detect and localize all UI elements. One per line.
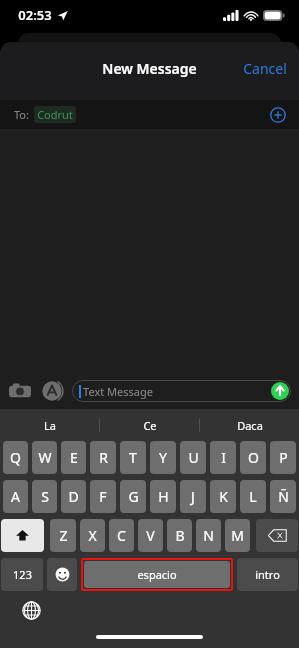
button[interactable]: Ce (100, 409, 199, 441)
button[interactable]: J (180, 480, 206, 513)
button[interactable]: F (90, 480, 116, 513)
button[interactable]: D (61, 480, 86, 513)
button[interactable]: N (196, 519, 221, 552)
staticText: C (117, 526, 126, 545)
button[interactable]: Ñ (270, 480, 296, 513)
staticText: N (203, 526, 214, 545)
staticText: U (188, 448, 199, 467)
staticText: Cancel (243, 59, 287, 78)
button[interactable]: L (240, 480, 266, 513)
button[interactable]: U (180, 441, 206, 474)
button[interactable]: A (3, 480, 28, 513)
staticText: Ce (143, 418, 157, 433)
staticText: S (41, 487, 49, 506)
button[interactable]: 123 (1, 558, 43, 591)
staticText: B (175, 526, 185, 545)
staticText: I (221, 448, 226, 467)
button[interactable]: G (120, 480, 146, 513)
staticText: K (219, 487, 228, 506)
button[interactable]: H (150, 480, 176, 513)
button[interactable]: I (210, 441, 236, 474)
button[interactable]: To: (0, 100, 299, 129)
button[interactable]: W (32, 441, 57, 474)
button[interactable]: Q (3, 441, 28, 474)
staticText: 02:53 (18, 6, 52, 24)
staticText: Ñ (278, 487, 289, 506)
staticText: Z (59, 526, 68, 545)
staticText: T (129, 448, 137, 467)
staticText: H (158, 487, 169, 506)
button[interactable]: Add contact (265, 102, 291, 128)
staticText: Y (159, 448, 167, 467)
button[interactable]: Send (271, 382, 289, 400)
button[interactable]: intro (237, 558, 298, 591)
button[interactable]: La (0, 409, 99, 441)
staticText: J (191, 487, 195, 506)
button[interactable]: Daca (200, 409, 299, 441)
staticText: P (279, 448, 288, 467)
staticText: D (68, 487, 79, 506)
button[interactable]: P (270, 441, 296, 474)
button[interactable]: Text Message (72, 380, 291, 402)
staticText: Codrut (37, 107, 73, 122)
staticText: G (128, 487, 139, 506)
button[interactable]: Z (50, 519, 76, 552)
staticText: M (231, 526, 244, 545)
staticText: 123 (13, 567, 32, 582)
button[interactable]: Change keyboard language (20, 599, 42, 621)
button[interactable]: Camera (8, 379, 32, 403)
button[interactable]: Backspace (256, 519, 298, 552)
button[interactable]: Shift (1, 519, 44, 552)
button[interactable]: S (32, 480, 57, 513)
staticText: intro (255, 567, 280, 582)
staticText: E (70, 448, 78, 467)
staticText: Daca (237, 418, 263, 433)
button[interactable]: K (210, 480, 236, 513)
staticText: A (11, 487, 20, 506)
button[interactable]: espacio (84, 561, 230, 588)
button[interactable]: Emoji (47, 558, 77, 591)
staticText: New Message (102, 59, 197, 78)
button[interactable]: O (240, 441, 266, 474)
staticText: Q (10, 448, 21, 467)
staticText: V (146, 526, 155, 545)
staticText: La (44, 418, 56, 433)
button[interactable]: Cancel (231, 53, 299, 84)
button[interactable]: M (225, 519, 250, 552)
button[interactable]: B (167, 519, 192, 552)
button[interactable]: T (120, 441, 146, 474)
staticText: L (249, 487, 257, 506)
button[interactable]: Y (150, 441, 176, 474)
staticText: W (38, 448, 52, 467)
staticText: To: (14, 107, 29, 122)
button[interactable]: X (80, 519, 105, 552)
staticText: O (248, 448, 259, 467)
staticText: X (88, 526, 97, 545)
staticText: Text Message (83, 384, 153, 399)
button[interactable]: R (90, 441, 116, 474)
button[interactable]: App Store (40, 379, 64, 403)
staticText: F (99, 487, 107, 506)
button[interactable]: E (61, 441, 86, 474)
staticText: R (99, 448, 108, 467)
button[interactable]: C (109, 519, 134, 552)
staticText: espacio (137, 567, 177, 582)
button[interactable]: V (138, 519, 163, 552)
